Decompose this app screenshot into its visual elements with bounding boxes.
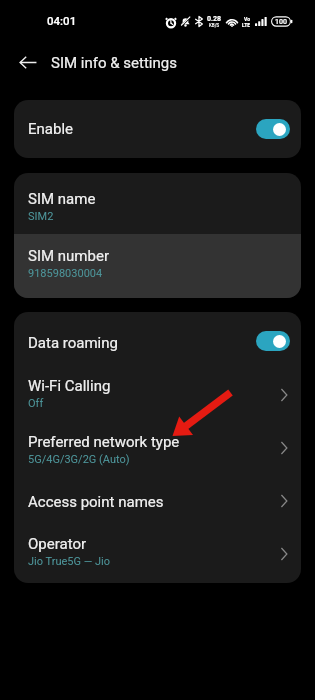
staticText: Operator [28, 535, 87, 553]
staticText: LTE [242, 22, 251, 28]
staticText: 0.28 [207, 15, 222, 23]
staticText: SIM number [28, 247, 109, 265]
button[interactable]: SIM name [14, 173, 301, 234]
staticText: 100 [275, 18, 287, 26]
button[interactable]: Wi-Fi Calling [14, 370, 301, 419]
button[interactable]: Enable [14, 100, 301, 158]
staticText: KB/S [209, 23, 220, 28]
staticText: SIM2 [28, 210, 54, 223]
staticText: 918598030004 [28, 267, 103, 280]
staticText: Off [28, 397, 44, 410]
button[interactable]: SIM number [14, 234, 301, 298]
button[interactable]: Back [14, 48, 42, 76]
staticText: 5G/4G/3G/2G (Auto) [28, 453, 130, 466]
button[interactable]: Toggle on [256, 331, 290, 351]
button[interactable]: Data roaming [14, 312, 301, 370]
staticText: Jio True5G — Jio [28, 555, 111, 568]
staticText: SIM name [28, 190, 96, 208]
button[interactable]: Operator [14, 525, 301, 583]
button[interactable]: Toggle on [256, 119, 290, 139]
button[interactable]: Preferred network type [14, 419, 301, 477]
staticText: Preferred network type [28, 433, 180, 451]
staticText: 04:01 [47, 14, 77, 27]
staticText: Data roaming [28, 334, 118, 352]
staticText: Access point names [28, 493, 164, 511]
staticText: Wi-Fi Calling [28, 377, 111, 395]
staticText: SIM info & settings [51, 54, 177, 72]
staticText: Enable [28, 120, 73, 138]
staticText: Vo [244, 16, 250, 22]
button[interactable]: Access point names [14, 477, 301, 525]
